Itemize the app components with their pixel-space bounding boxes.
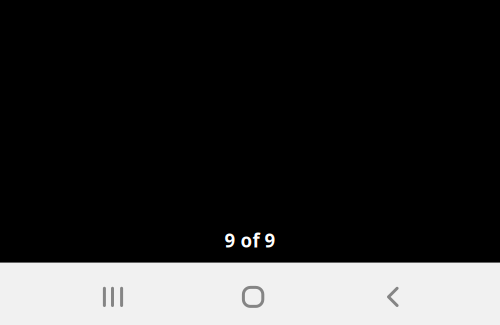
staticText: 9 of 9 [224,228,275,253]
button[interactable]: Recent apps [71,263,155,325]
button[interactable]: Home [211,263,295,325]
button[interactable]: Back [351,263,435,325]
